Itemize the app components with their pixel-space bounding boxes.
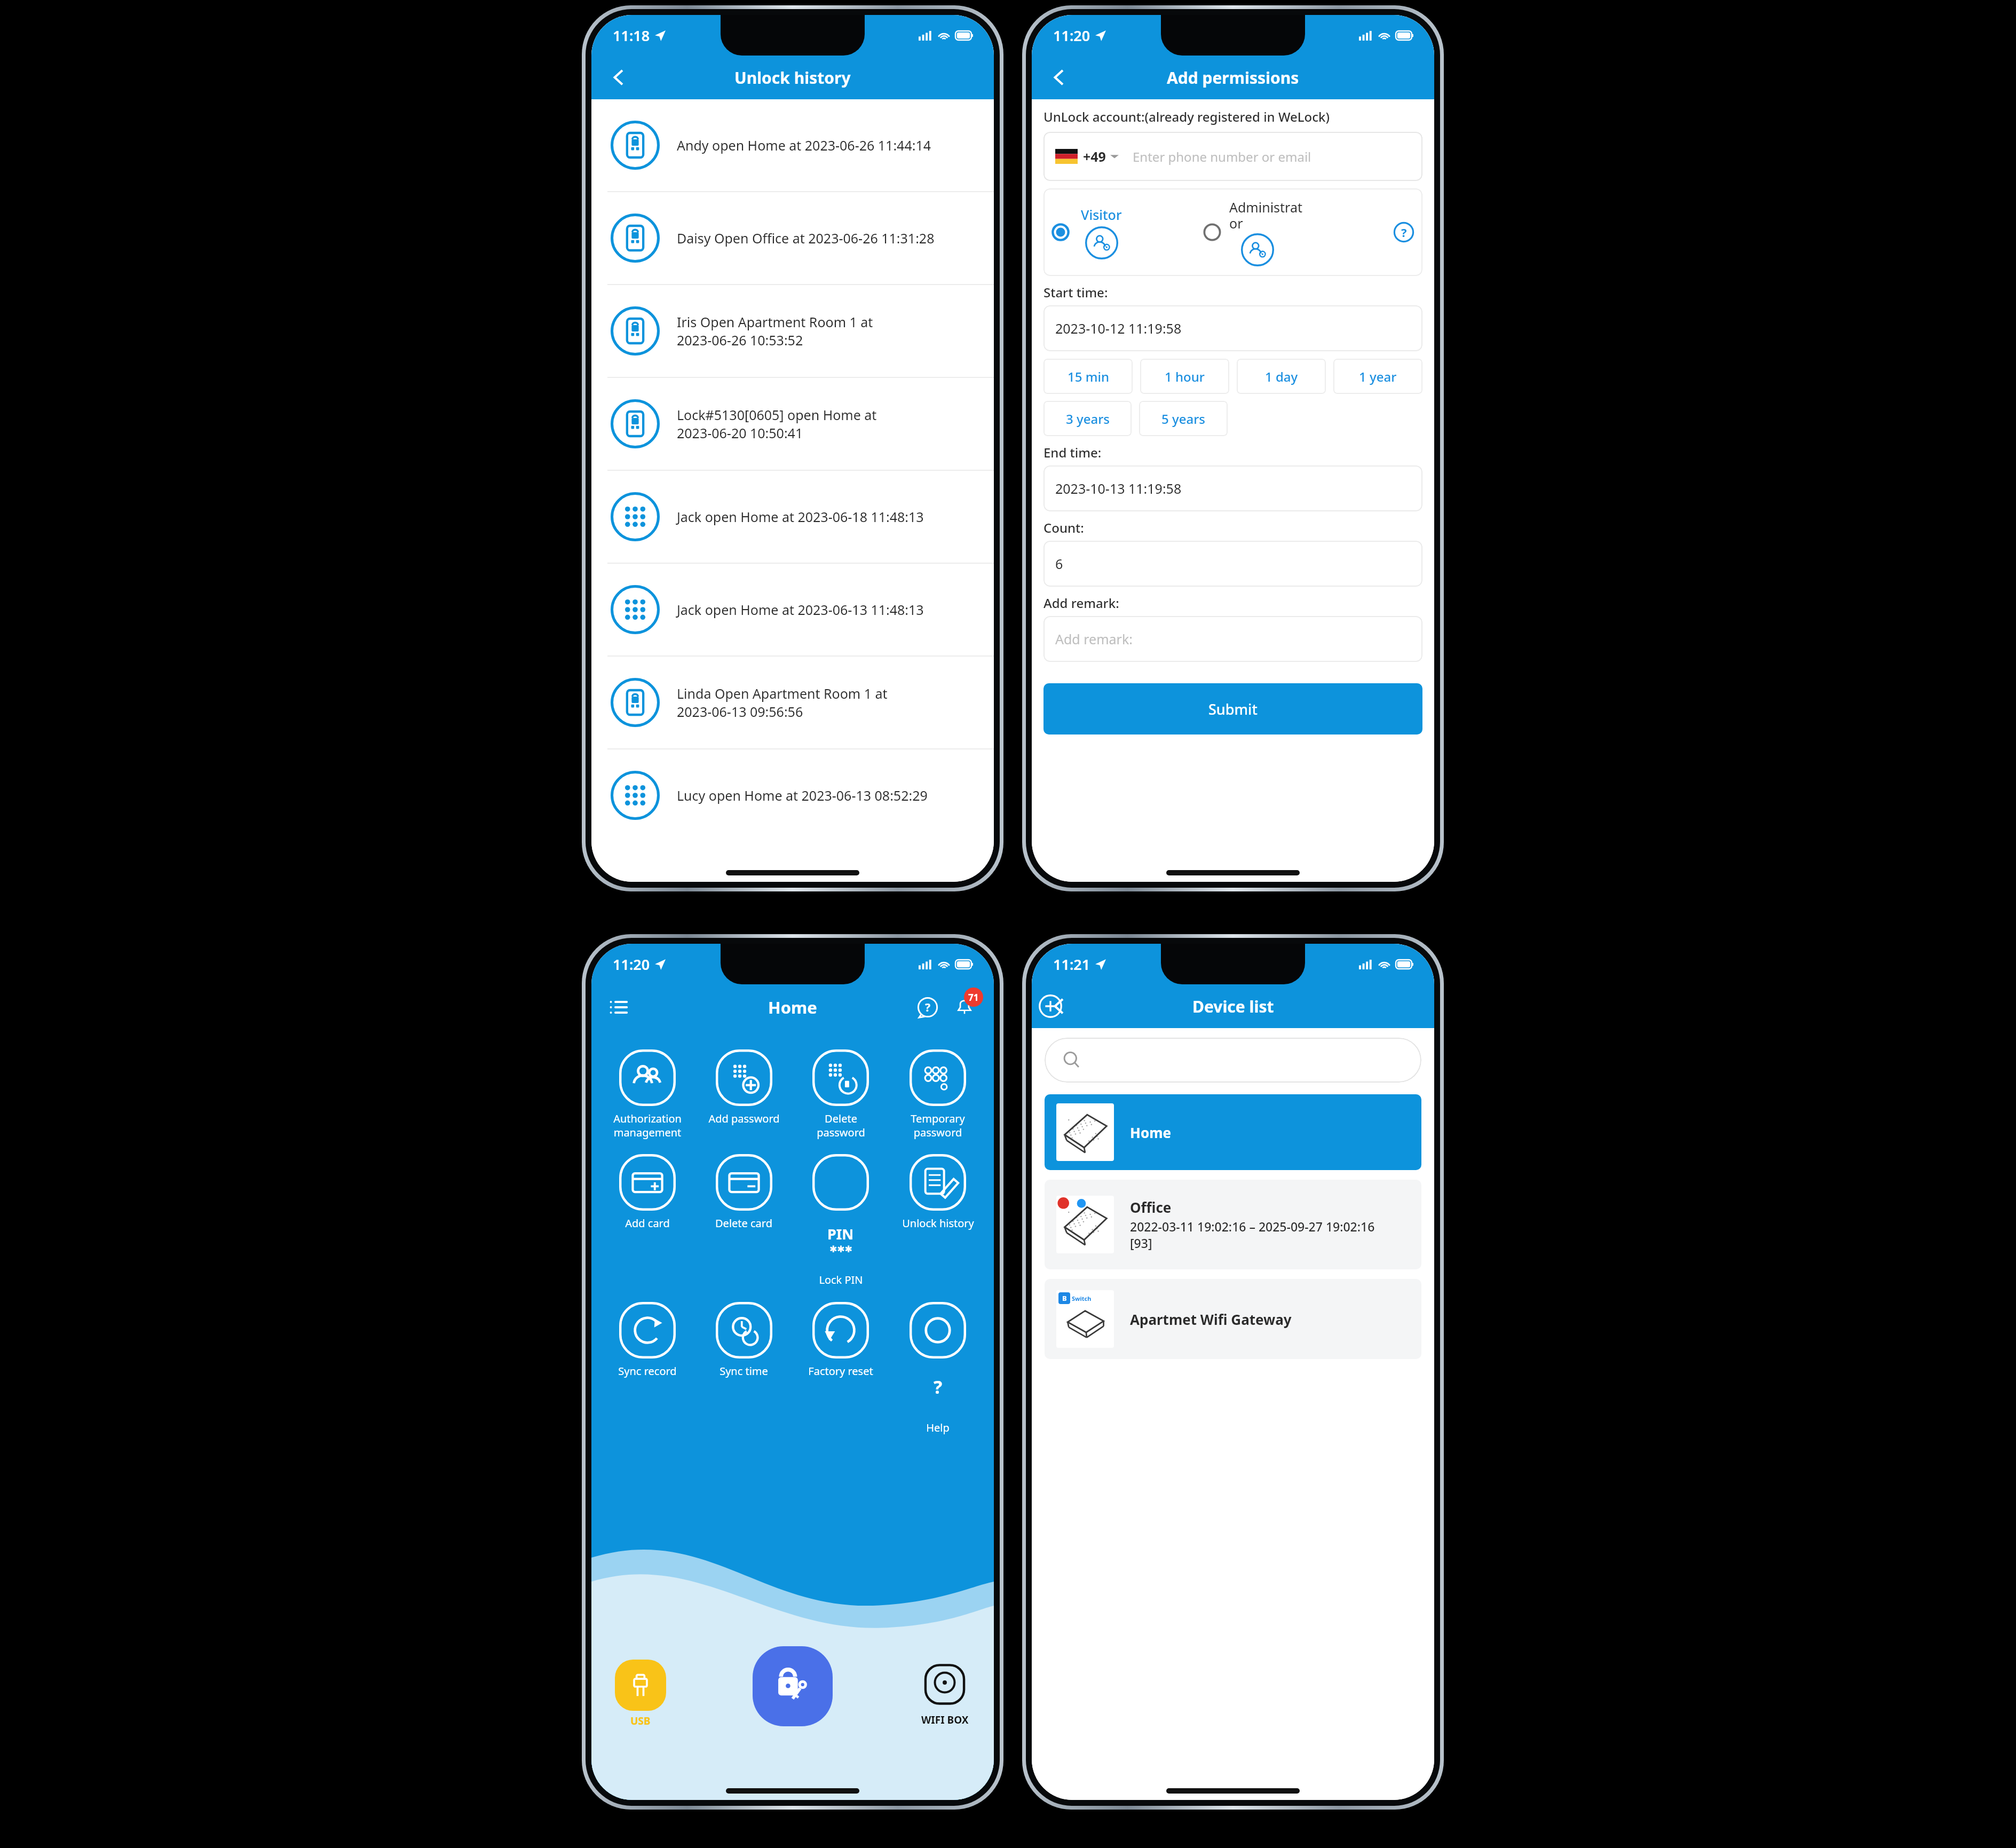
staticText: Office <box>1130 1198 1172 1217</box>
staticText: Submit <box>1208 699 1258 719</box>
button[interactable]: Notifications <box>948 991 981 1024</box>
staticText: ? <box>925 1000 931 1015</box>
staticText: 11:20 <box>1053 26 1090 45</box>
staticText: 11:21 <box>1053 954 1090 974</box>
staticText: Apartmet Wifi Gateway <box>1130 1310 1292 1329</box>
button[interactable]: Andy open Home at 2023-06-26 11:44:14 <box>591 99 994 191</box>
staticText: Jack open Home at 2023-06-13 11:48:13 <box>677 601 924 619</box>
button[interactable]: Sync time <box>695 1299 792 1381</box>
staticText: Help <box>926 1420 950 1435</box>
staticText: Linda Open Apartment Room 1 at <box>677 684 888 702</box>
staticText: B <box>1062 1293 1067 1303</box>
button[interactable]: Home <box>1045 1094 1421 1170</box>
button[interactable]: Help <box>913 992 943 1022</box>
button[interactable]: Add card <box>599 1151 695 1234</box>
staticText: 6 <box>1055 555 1063 573</box>
staticText: Authorization management <box>613 1111 682 1139</box>
button[interactable]: Lucy open Home at 2023-06-13 08:52:29 <box>591 749 994 841</box>
button[interactable]: PIN <box>792 1151 889 1290</box>
button[interactable]: WiFi box <box>919 1661 970 1712</box>
button[interactable]: Lock#5130[0605] open Home at <box>591 378 994 470</box>
staticText: Count: <box>1043 519 1084 536</box>
button[interactable]: Add remark: <box>1043 616 1422 662</box>
staticText: ? <box>934 1375 943 1399</box>
button[interactable]: Jack open Home at 2023-06-13 11:48:13 <box>591 564 994 656</box>
staticText: Sync record <box>618 1364 677 1378</box>
button[interactable]: Iris Open Apartment Room 1 at <box>591 285 994 377</box>
staticText: WIFI BOX <box>921 1713 969 1727</box>
button[interactable]: 2023-10-13 11:19:58 <box>1043 465 1422 511</box>
staticText: Lucy open Home at 2023-06-13 08:52:29 <box>677 786 928 804</box>
button[interactable]: Menu <box>603 991 635 1023</box>
staticText: USB <box>630 1714 651 1728</box>
button[interactable]: Submit <box>1043 683 1422 735</box>
button[interactable]: Delete card <box>695 1151 792 1234</box>
button[interactable]: 1 year <box>1333 359 1422 394</box>
staticText: UnLock account:(already registered in We… <box>1043 108 1330 125</box>
staticText: Andy open Home at 2023-06-26 11:44:14 <box>677 136 931 154</box>
button[interactable]: Back <box>1042 60 1077 94</box>
staticText: Home <box>768 996 817 1018</box>
staticText: Administrat or <box>1229 198 1302 232</box>
button[interactable]: Unlock history <box>889 1151 986 1234</box>
button[interactable]: USB <box>615 1660 666 1711</box>
staticText: 3 years <box>1066 410 1110 428</box>
button[interactable]: Unlock <box>753 1646 833 1726</box>
button[interactable]: Visitor <box>1050 188 1201 276</box>
button[interactable]: Daisy Open Office at 2023-06-26 11:31:28 <box>591 192 994 284</box>
staticText: 2023-06-26 10:53:52 <box>677 331 803 349</box>
staticText: Lock PIN <box>819 1273 863 1287</box>
button[interactable]: Temporary password <box>889 1046 986 1142</box>
staticText: 15 min <box>1068 368 1109 385</box>
staticText: PIN <box>827 1224 854 1244</box>
button[interactable]: Help <box>1392 220 1416 244</box>
button[interactable]: Back <box>602 60 636 94</box>
staticText: Sync time <box>720 1364 768 1378</box>
staticText: [93] <box>1130 1235 1152 1251</box>
button[interactable]: Authorization management <box>599 1046 695 1142</box>
button[interactable] <box>1045 1038 1421 1083</box>
button[interactable]: +49 <box>1043 132 1422 181</box>
staticText: 11:18 <box>613 26 650 45</box>
button[interactable]: Delete password <box>792 1046 889 1142</box>
button[interactable]: Add password <box>695 1046 792 1129</box>
button[interactable]: Add device <box>1032 984 1069 1028</box>
staticText: Factory reset <box>808 1364 873 1378</box>
staticText: 2022-03-11 19:02:16 – 2025-09-27 19:02:1… <box>1130 1218 1375 1235</box>
button[interactable]: Factory reset <box>792 1299 889 1381</box>
button[interactable]: Jack open Home at 2023-06-18 11:48:13 <box>591 471 994 563</box>
button[interactable]: Linda Open Apartment Room 1 at <box>591 657 994 748</box>
button[interactable]: ? <box>889 1299 986 1438</box>
staticText: Add permissions <box>1167 67 1299 89</box>
staticText: 1 year <box>1359 368 1397 385</box>
button[interactable]: 2023-10-12 11:19:58 <box>1043 305 1422 351</box>
button[interactable]: 6 <box>1043 541 1422 587</box>
button[interactable]: B <box>1045 1279 1421 1359</box>
button[interactable]: Sync record <box>599 1299 695 1381</box>
button[interactable]: 3 years <box>1043 401 1132 436</box>
staticText: Add remark: <box>1055 630 1133 648</box>
button[interactable]: Office <box>1045 1180 1421 1269</box>
staticText: End time: <box>1043 444 1102 461</box>
staticText: Iris Open Apartment Room 1 at <box>677 313 873 331</box>
staticText: Enter phone number or email <box>1133 148 1311 165</box>
staticText: Unlock history <box>734 67 851 89</box>
button[interactable]: Back <box>1042 989 1077 1023</box>
staticText: Add card <box>625 1216 670 1230</box>
button[interactable]: 1 hour <box>1140 359 1229 394</box>
staticText: Lock#5130[0605] open Home at <box>677 406 877 424</box>
staticText: Delete password <box>817 1111 865 1139</box>
staticText: 2023-10-12 11:19:58 <box>1055 319 1182 337</box>
staticText: ? <box>1401 224 1407 240</box>
button[interactable]: Administrat or <box>1201 188 1392 276</box>
staticText: Device list <box>1192 996 1274 1017</box>
staticText: Delete card <box>715 1216 772 1230</box>
staticText: Temporary password <box>911 1111 965 1139</box>
button[interactable]: 15 min <box>1043 359 1133 394</box>
button[interactable]: 1 day <box>1237 359 1326 394</box>
button[interactable]: 5 years <box>1139 401 1228 436</box>
staticText: Add password <box>708 1111 780 1126</box>
staticText: Unlock history <box>902 1216 974 1230</box>
staticText: Jack open Home at 2023-06-18 11:48:13 <box>677 508 924 526</box>
staticText: 1 day <box>1265 368 1298 385</box>
